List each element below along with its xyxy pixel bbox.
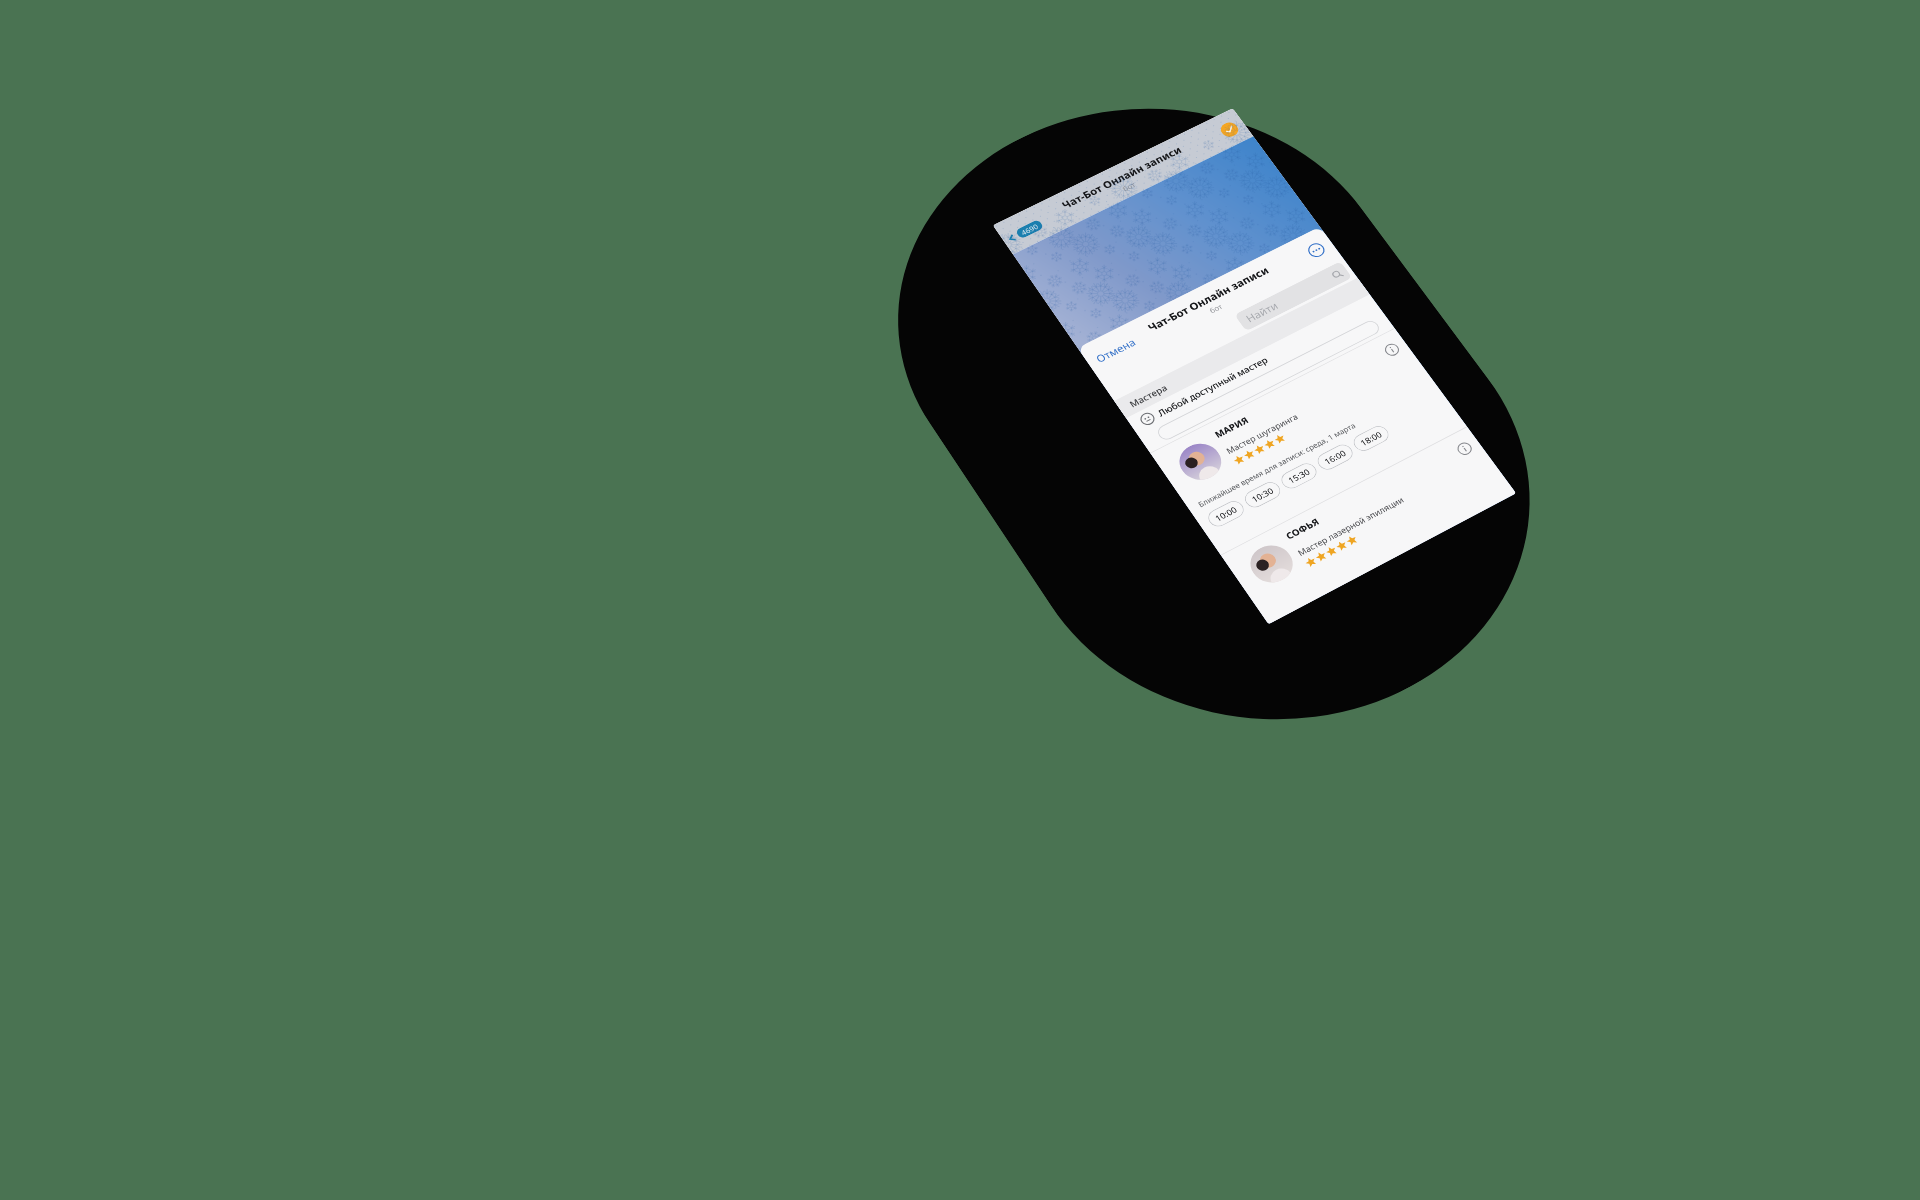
- staticText: Мастера: [1127, 381, 1170, 410]
- staticText: Мастер шугаринга: [1224, 411, 1300, 456]
- button[interactable]: [1155, 318, 1382, 442]
- staticText: бот: [1207, 301, 1224, 315]
- staticText: Отмена: [1093, 335, 1139, 366]
- button[interactable]: Bot avatar: [1218, 120, 1241, 139]
- staticText: 18:00: [1358, 429, 1384, 448]
- button[interactable]: СОФЬЯ: [1221, 427, 1507, 612]
- other: Any master: [1138, 410, 1157, 427]
- staticText: 15:30: [1286, 466, 1312, 486]
- staticText: 10:30: [1249, 485, 1276, 505]
- button[interactable]: Отмена: [1093, 335, 1139, 366]
- staticText: СОФЬЯ: [1283, 515, 1321, 542]
- button[interactable]: Найти: [1234, 261, 1352, 331]
- button[interactable]: 10:30: [1241, 479, 1284, 511]
- staticText: 16:00: [1322, 447, 1348, 467]
- button[interactable]: 15:30: [1277, 460, 1320, 492]
- staticText: Чат-Бот Онлайн записи: [1145, 263, 1272, 334]
- other: Back: [1004, 231, 1020, 245]
- staticText: 4690: [1019, 221, 1040, 237]
- staticText: Любой доступный мастер: [1155, 354, 1270, 419]
- staticText: МАРИЯ: [1212, 414, 1251, 440]
- staticText: 10:00: [1213, 504, 1239, 524]
- button[interactable]: Info: [1455, 440, 1475, 457]
- staticText: Мастер лазерной эпиляции: [1295, 494, 1406, 558]
- button[interactable]: Back: [1004, 219, 1044, 245]
- staticText: бот: [1120, 180, 1137, 193]
- button[interactable]: МАРИЯ: [1150, 328, 1467, 555]
- button[interactable]: 16:00: [1314, 441, 1357, 473]
- button[interactable]: 10:00: [1204, 498, 1248, 530]
- button[interactable]: Info: [1382, 341, 1402, 358]
- staticText: Ближайшее время для записи: среда, 1 мар…: [1196, 420, 1357, 509]
- button[interactable]: Any master: [1126, 294, 1382, 435]
- button[interactable]: More options: [1305, 241, 1328, 260]
- staticText: Найти: [1243, 298, 1281, 325]
- button[interactable]: 18:00: [1350, 423, 1392, 454]
- staticText: Чат-Бот Онлайн записи: [1059, 143, 1185, 212]
